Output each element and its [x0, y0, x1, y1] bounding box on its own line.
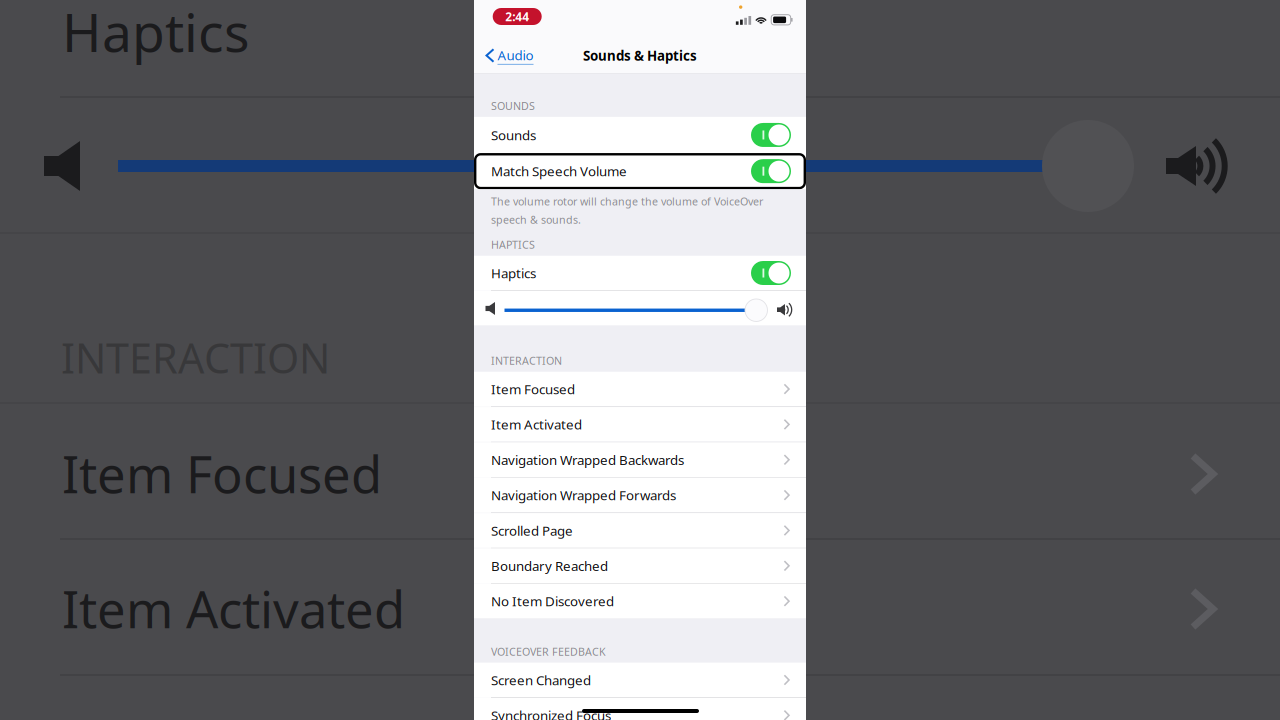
button[interactable]: Scrolled Page	[474, 513, 806, 548]
staticText: Sounds	[491, 126, 536, 144]
button[interactable]: Sounds	[474, 117, 806, 153]
staticText: Audio	[497, 46, 533, 64]
staticText: Synchronized Focus	[491, 706, 611, 720]
staticText: Scrolled Page	[491, 522, 573, 539]
staticText: Item Focused	[62, 440, 382, 507]
staticText: SOUNDS	[491, 99, 535, 113]
staticText: Item Activated	[491, 416, 582, 433]
staticText: Match Speech Volume	[491, 162, 627, 180]
staticText: HAPTICS	[491, 238, 535, 252]
button[interactable]: Boundary Reached	[474, 548, 806, 583]
button[interactable]: Item Activated	[474, 407, 806, 442]
staticText: speech & sounds.	[491, 212, 581, 227]
staticText: Sounds & Haptics	[583, 47, 697, 64]
button[interactable]: Audio	[474, 41, 533, 70]
button[interactable]: Navigation Wrapped Backwards	[474, 442, 806, 477]
staticText: INTERACTION	[491, 354, 562, 368]
staticText: Item Activated	[62, 575, 405, 642]
button[interactable]: Haptics	[474, 256, 806, 290]
button[interactable]: Navigation Wrapped Forwards	[474, 478, 806, 512]
button[interactable]: Item Focused	[474, 372, 806, 406]
button[interactable]: Screen Changed	[474, 663, 806, 697]
button[interactable]: Haptic intensity	[474, 291, 806, 326]
button[interactable]: Synchronized Focus	[474, 698, 806, 720]
staticText: VOICEOVER FEEDBACK	[491, 644, 606, 659]
staticText: 2:44	[505, 8, 529, 24]
staticText: Item Focused	[491, 380, 575, 398]
staticText: Haptics	[62, 0, 250, 67]
button[interactable]: No Item Discovered	[474, 584, 806, 618]
staticText: Haptics	[491, 264, 536, 282]
staticText: Navigation Wrapped Forwards	[491, 486, 676, 504]
button[interactable]: Match Speech Volume	[474, 153, 806, 189]
staticText: Boundary Reached	[491, 557, 608, 575]
staticText: Navigation Wrapped Backwards	[491, 451, 684, 469]
staticText: The volume rotor will change the volume …	[491, 194, 763, 208]
staticText: INTERACTION	[61, 330, 330, 385]
staticText: No Item Discovered	[491, 592, 614, 610]
staticText: Screen Changed	[491, 671, 591, 689]
